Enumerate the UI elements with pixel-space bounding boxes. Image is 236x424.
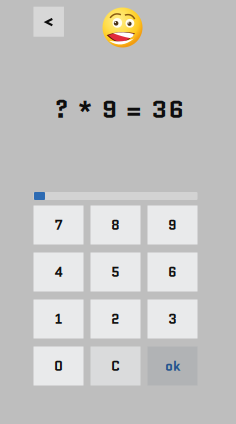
staticText: 6: [168, 262, 177, 282]
button[interactable]: 9: [147, 205, 197, 244]
staticText: 9: [168, 215, 177, 235]
staticText: C: [111, 356, 120, 376]
staticText: 1: [54, 309, 62, 329]
button[interactable]: 8: [90, 205, 140, 244]
button[interactable]: C: [90, 346, 140, 385]
staticText: 5: [111, 262, 120, 282]
button[interactable]: 6: [147, 252, 197, 291]
button[interactable]: 5: [90, 252, 140, 291]
staticText: 2: [111, 309, 120, 329]
staticText: 8: [111, 215, 120, 235]
button[interactable]: Back: [33, 7, 64, 37]
button[interactable]: 3: [147, 299, 197, 338]
button[interactable]: 1: [33, 299, 83, 338]
button[interactable]: ok: [147, 346, 197, 385]
staticText: 7: [54, 215, 62, 235]
button[interactable]: 4: [33, 252, 83, 291]
staticText: ok: [165, 356, 180, 376]
button[interactable]: 7: [33, 205, 83, 244]
staticText: 3: [168, 309, 177, 329]
button[interactable]: 2: [90, 299, 140, 338]
staticText: 0: [54, 356, 63, 376]
staticText: 4: [54, 262, 62, 282]
staticText: ? * 9 = 36: [54, 92, 183, 127]
button[interactable]: 0: [33, 346, 83, 385]
